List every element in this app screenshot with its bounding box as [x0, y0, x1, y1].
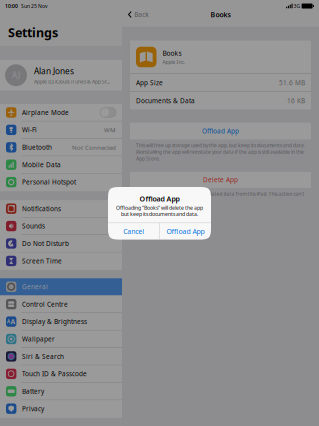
- staticText: Documents & Data: [136, 96, 195, 105]
- staticText: Back: [134, 10, 149, 19]
- button[interactable]: Siri & Search: [0, 348, 122, 365]
- staticText: Sounds: [22, 222, 45, 230]
- staticText: General: [22, 282, 48, 291]
- staticText: This will delete the app and all related…: [136, 191, 304, 204]
- staticText: WM: [104, 126, 116, 134]
- button[interactable]: Offload App: [160, 223, 211, 240]
- staticText: Wi-Fi: [22, 125, 37, 134]
- button[interactable]: Cancel: [108, 223, 159, 240]
- staticText: Touch ID & Passcode: [22, 369, 87, 378]
- button[interactable]: Offload App: [130, 123, 311, 139]
- staticText: Apple Inc.: [162, 59, 184, 65]
- button[interactable]: Touch ID & Passcode: [0, 365, 122, 383]
- button[interactable]: Airplane Mode: [0, 104, 122, 121]
- button[interactable]: Privacy: [0, 400, 122, 418]
- staticText: 51.6 MB: [279, 78, 305, 87]
- staticText: Cancel: [123, 227, 144, 236]
- button[interactable]: Back: [122, 9, 153, 19]
- staticText: Wallpaper: [22, 335, 55, 343]
- staticText: Control Centre: [22, 300, 68, 308]
- button[interactable]: Battery: [0, 383, 122, 400]
- staticText: Privacy: [22, 404, 44, 413]
- button[interactable]: Control Centre: [0, 296, 122, 313]
- staticText: Offload App: [139, 194, 179, 204]
- staticText: A: [10, 317, 15, 326]
- staticText: Bluetooth: [22, 143, 52, 152]
- button[interactable]: Wi-Fi: [0, 121, 122, 139]
- staticText: Offload App: [166, 227, 204, 236]
- staticText: Books: [210, 10, 230, 19]
- staticText: Books: [162, 48, 181, 58]
- staticText: 10:00: [5, 2, 18, 9]
- staticText: AJ: [12, 70, 20, 81]
- button[interactable]: Personal Hotspot: [0, 174, 122, 191]
- staticText: Airplane Mode: [22, 108, 69, 117]
- staticText: App Size: [136, 78, 163, 87]
- staticText: This will free up storage used by the ap…: [136, 142, 305, 162]
- staticText: Siri & Search: [22, 352, 64, 361]
- staticText: Screen Time: [22, 257, 62, 265]
- button[interactable]: Do Not Disturb: [0, 235, 122, 252]
- staticText: Settings: [8, 24, 58, 41]
- staticText: Alan Jones: [34, 65, 74, 77]
- staticText: 16 KB: [287, 96, 305, 105]
- staticText: Not Connected: [72, 143, 116, 151]
- staticText: Notifications: [22, 204, 61, 213]
- staticText: 3G: [293, 2, 302, 9]
- button[interactable]: General: [0, 278, 122, 296]
- button[interactable]: Bluetooth: [0, 139, 122, 156]
- button[interactable]: Screen Time: [0, 252, 122, 270]
- staticText: Offload App: [202, 127, 239, 135]
- staticText: A: [7, 318, 10, 325]
- staticText: Apple ID, iCloud, iTunes & App St...: [34, 78, 110, 85]
- staticText: Do Not Disturb: [22, 239, 69, 248]
- button[interactable]: Notifications: [0, 200, 122, 218]
- button[interactable]: Wallpaper: [0, 330, 122, 348]
- staticText: Personal Hotspot: [22, 178, 76, 186]
- button[interactable]: Delete App: [130, 172, 311, 188]
- button[interactable]: A: [0, 313, 122, 330]
- staticText: but keep its documents and data.: [121, 211, 198, 218]
- staticText: Delete App: [203, 175, 238, 184]
- staticText: Display & Brightness: [22, 317, 87, 326]
- button[interactable]: Sounds: [0, 218, 122, 235]
- staticText: Battery: [22, 387, 44, 396]
- button[interactable]: Mobile Data: [0, 156, 122, 174]
- staticText: Sun 25 Nov: [18, 2, 48, 9]
- staticText: Mobile Data: [22, 160, 61, 169]
- staticText: Offloading "Books" will delete the app: [116, 204, 203, 211]
- button[interactable]: AJ: [0, 60, 122, 90]
